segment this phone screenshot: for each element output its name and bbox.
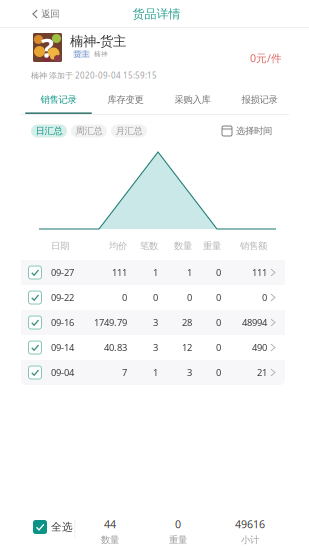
staticText: 1 (153, 266, 158, 279)
staticText: 全选 (51, 520, 73, 533)
staticText: 21 (257, 366, 267, 379)
staticText: 1749.79 (94, 316, 127, 329)
staticText: 12 (182, 341, 192, 354)
staticText: 选择时间 (236, 125, 272, 137)
staticText: 重量 (203, 240, 221, 252)
button[interactable]: 周汇总 (71, 124, 107, 137)
staticText: 均价 (109, 240, 127, 252)
staticText: 48994 (242, 316, 267, 329)
staticText: 0 (262, 291, 267, 304)
staticText: 0 (216, 291, 221, 304)
staticText: 楠神-货主 (70, 32, 126, 50)
staticText: 09-27 (51, 266, 74, 279)
staticText: 1 (187, 266, 192, 279)
staticText: 小计 (241, 534, 259, 546)
staticText: 楠神 添加于 2020-09-04 15:59:15 (31, 70, 157, 81)
staticText: 楠神 (94, 50, 108, 58)
staticText: 0 (175, 517, 181, 531)
staticText: 111 (252, 266, 267, 279)
staticText: 3 (187, 366, 192, 379)
staticText: 40.83 (104, 341, 127, 354)
button[interactable]: 销售记录 (25, 87, 92, 114)
staticText: 111 (112, 266, 127, 279)
button[interactable]: 09-16 (21, 310, 285, 335)
staticText: 返回 (41, 8, 59, 20)
button[interactable]: 选择时间 (222, 125, 272, 137)
staticText: 日汇总 (35, 125, 62, 137)
staticText: 数量 (174, 240, 192, 252)
button[interactable]: 月汇总 (111, 124, 147, 137)
staticText: 1 (153, 366, 158, 379)
staticText: 7 (122, 366, 127, 379)
button[interactable]: 全选 (21, 508, 85, 546)
button[interactable]: 09-27 (21, 260, 285, 285)
staticText: 0 (187, 291, 192, 304)
staticText: 库存变更 (107, 94, 143, 105)
staticText: ? (41, 30, 54, 65)
button[interactable]: 报损记录 (226, 87, 293, 114)
button[interactable]: 09-22 (21, 285, 285, 310)
button[interactable]: 返回 (0, 1, 69, 27)
staticText: 0 (216, 366, 221, 379)
staticText: 09-22 (51, 291, 74, 304)
staticText: 周汇总 (75, 125, 102, 137)
button[interactable]: 库存变更 (92, 87, 159, 114)
button[interactable]: 09-04 (21, 360, 285, 385)
staticText: 货品详情 (132, 7, 180, 21)
staticText: 报损记录 (241, 94, 277, 105)
staticText: 销售记录 (40, 94, 76, 105)
staticText: 09-14 (51, 341, 74, 354)
staticText: 0元/件 (250, 51, 282, 65)
staticText: 笔数 (140, 240, 158, 252)
staticText: 销售额 (240, 240, 267, 252)
staticText: 0 (122, 291, 127, 304)
staticText: 重量 (169, 534, 187, 546)
staticText: 0 (153, 291, 158, 304)
button[interactable]: 采购入库 (159, 87, 226, 114)
button[interactable]: 09-14 (21, 335, 285, 360)
staticText: 44 (104, 517, 116, 531)
staticText: 0 (216, 341, 221, 354)
staticText: 数量 (101, 534, 119, 546)
staticText: 3 (153, 341, 158, 354)
staticText: 采购入库 (174, 94, 210, 105)
button[interactable]: 日汇总 (31, 124, 67, 137)
staticText: 09-04 (51, 366, 74, 379)
staticText: 0 (216, 266, 221, 279)
staticText: 月汇总 (115, 125, 142, 137)
staticText: 09-16 (51, 316, 74, 329)
staticText: 49616 (235, 517, 265, 531)
staticText: 28 (182, 316, 192, 329)
staticText: 0 (216, 316, 221, 329)
staticText: 3 (153, 316, 158, 329)
staticText: 货主 (73, 49, 89, 59)
staticText: 490 (252, 341, 267, 354)
staticText: 日期 (51, 240, 69, 252)
